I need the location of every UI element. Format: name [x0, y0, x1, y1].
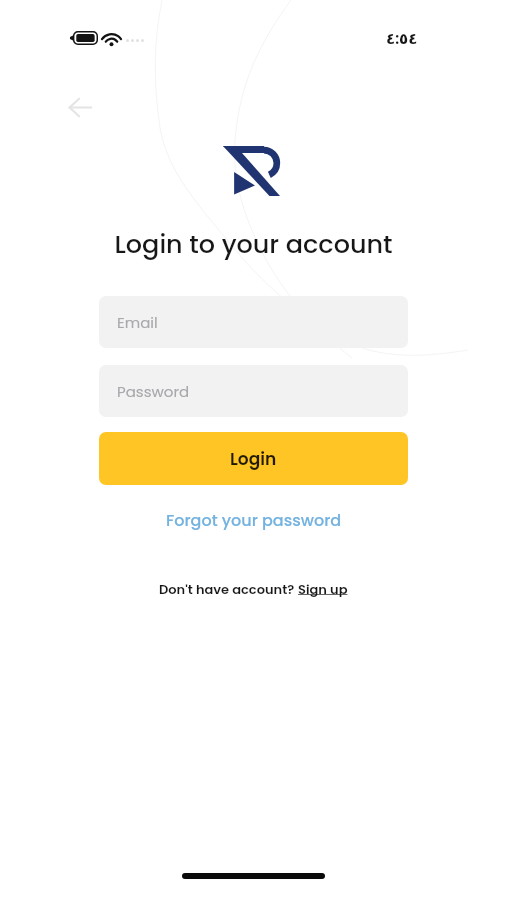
staticText: Login — [230, 447, 277, 471]
staticText: Sign up — [298, 580, 348, 598]
button[interactable]: Password — [99, 365, 408, 417]
staticText: Forgot your password — [166, 509, 342, 531]
staticText: ٤:٥٤ — [386, 28, 418, 49]
staticText: Login to your account — [0, 226, 507, 262]
button[interactable]: Forgot your password — [156, 504, 352, 536]
button[interactable]: Sign up — [298, 580, 348, 598]
button[interactable]: Back — [59, 87, 100, 128]
button[interactable]: Email — [99, 296, 408, 348]
staticText: Email — [117, 312, 158, 333]
button[interactable]: Login — [99, 432, 408, 485]
staticText: Don't have account? — [159, 580, 298, 598]
staticText: Password — [117, 381, 190, 402]
